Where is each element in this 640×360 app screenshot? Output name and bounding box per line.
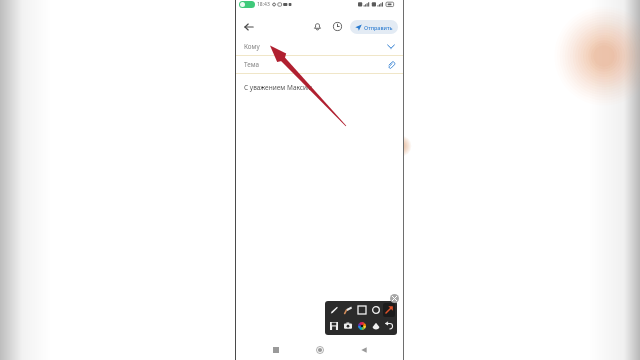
button[interactable]: Recent apps	[268, 342, 284, 358]
button[interactable]: Marker	[341, 303, 355, 317]
staticText: С уважением Максим.	[244, 83, 314, 92]
staticText: 18:43	[257, 1, 270, 8]
button[interactable]: Pen	[327, 303, 341, 317]
button[interactable]: Attach file	[384, 58, 397, 71]
button[interactable]: Тема	[236, 56, 403, 73]
button[interactable]: Save	[327, 319, 341, 333]
button[interactable]: Undo	[383, 319, 395, 333]
button[interactable]: Rectangle	[355, 303, 369, 317]
button[interactable]: Close	[390, 294, 399, 303]
button[interactable]: Expand recipients	[384, 40, 397, 53]
button[interactable]: Notifications	[310, 19, 325, 34]
button[interactable]: Camera	[341, 319, 355, 333]
button[interactable]: Ellipse	[369, 303, 383, 317]
button[interactable]: Blur	[369, 319, 383, 333]
button[interactable]: Home	[312, 342, 328, 358]
button[interactable]: Arrow	[383, 303, 395, 317]
button[interactable]: Кому	[236, 38, 403, 55]
staticText: Тема	[244, 60, 260, 69]
button[interactable]: Отправить	[350, 20, 398, 34]
button[interactable]: Schedule send	[330, 19, 345, 34]
button[interactable]: Back	[241, 19, 257, 35]
staticText: Отправить	[364, 24, 393, 31]
button[interactable]: Back	[356, 342, 372, 358]
staticText: Кому	[244, 42, 260, 51]
button[interactable]: Color	[355, 319, 369, 333]
